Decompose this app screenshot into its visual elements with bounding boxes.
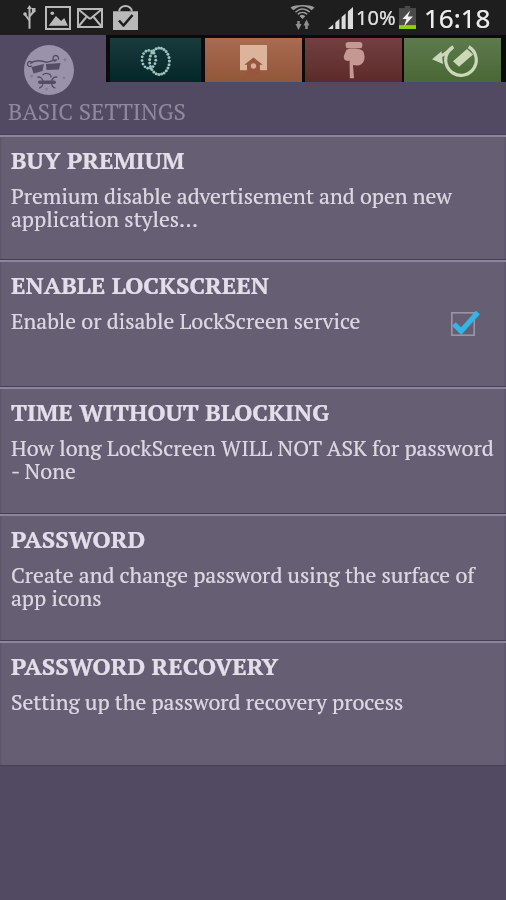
staticText: TIME WITHOUT BLOCKING <box>11 396 330 428</box>
staticText: PASSWORD RECOVERY <box>11 650 279 682</box>
button[interactable]: BUY PREMIUM <box>0 137 506 259</box>
button[interactable]: Select tab <box>305 38 402 82</box>
button[interactable]: Active tab <box>110 38 201 82</box>
button[interactable]: Edit tab <box>404 38 501 82</box>
button[interactable]: Enable LockScreen <box>446 307 480 341</box>
staticText: 16:18 <box>424 0 491 35</box>
button[interactable]: TIME WITHOUT BLOCKING <box>0 389 506 513</box>
staticText: PASSWORD <box>11 523 146 555</box>
button[interactable]: PASSWORD <box>0 516 506 640</box>
staticText: Setting up the password recovery process <box>11 688 404 716</box>
staticText: How long LockScreen WILL NOT ASK for pas… <box>11 434 497 486</box>
button[interactable]: ENABLE LOCKSCREEN <box>0 262 506 386</box>
button[interactable]: App icon <box>24 45 74 95</box>
button[interactable]: Home tab <box>205 38 302 82</box>
staticText: BUY PREMIUM <box>11 144 185 176</box>
button[interactable]: PASSWORD RECOVERY <box>0 643 506 765</box>
staticText: Premium disable advertisement and open n… <box>11 182 497 234</box>
staticText: BASIC SETTINGS <box>8 96 186 126</box>
staticText: Create and change password using the sur… <box>11 561 497 613</box>
staticText: ENABLE LOCKSCREEN <box>11 269 269 301</box>
staticText: Enable or disable LockScreen service <box>11 307 361 335</box>
staticText: 10% <box>356 4 396 31</box>
